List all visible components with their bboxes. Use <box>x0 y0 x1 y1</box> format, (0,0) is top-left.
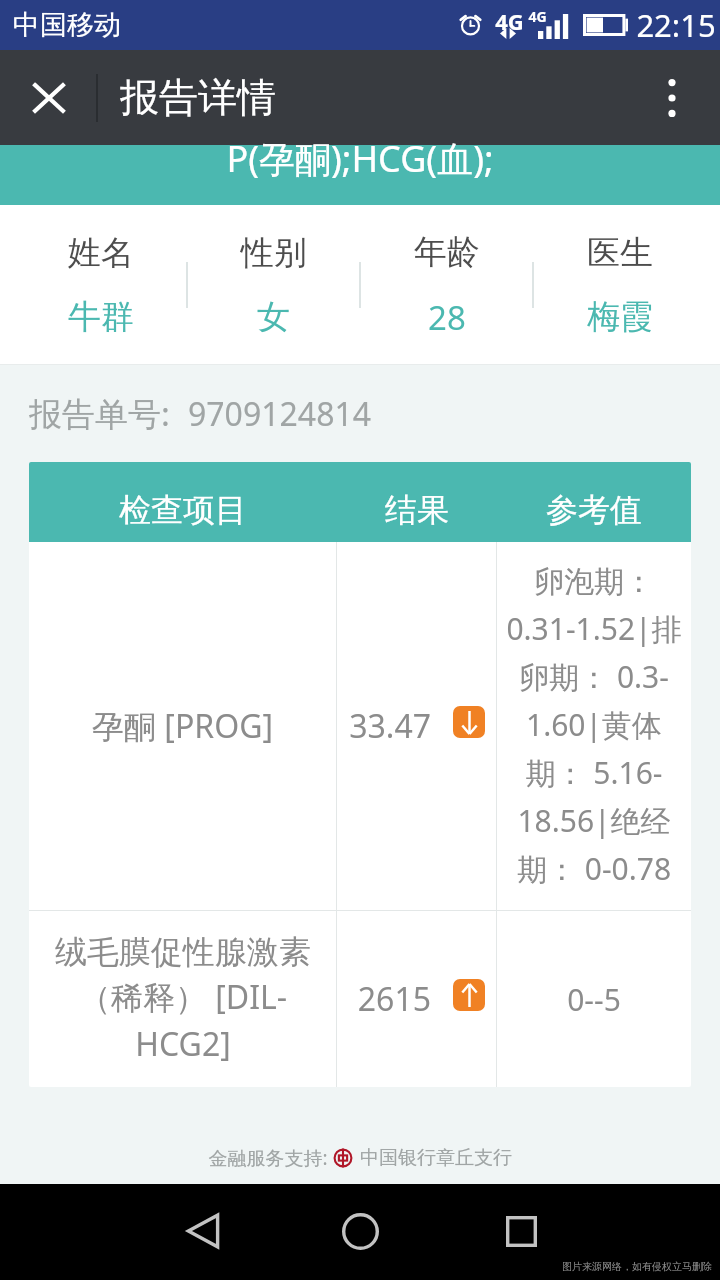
staticText: 中国移动 <box>13 8 121 42</box>
staticText: 报告详情 <box>120 73 276 122</box>
staticText: 28 <box>428 295 466 340</box>
staticText: 9709124814 <box>188 392 372 436</box>
staticText: 卵泡期： 0.31-1.52|排 卵期： 0.3- 1.60|黄体 期： 5.1… <box>506 563 682 889</box>
staticText: 报告单号: <box>29 391 170 436</box>
staticText: 年龄 <box>414 231 480 273</box>
staticText: 2615 <box>357 977 431 1021</box>
staticText: 0--5 <box>567 979 621 1020</box>
staticText: 绒毛膜促性腺激素 （稀释） [DIL- HCG2] <box>55 932 311 1066</box>
staticText: 中国银行章丘支行 <box>360 1146 512 1170</box>
staticText: 金融服务支持: <box>208 1145 328 1171</box>
button[interactable]: Recent apps <box>481 1191 561 1271</box>
button[interactable]: Home <box>320 1191 400 1271</box>
button[interactable]: More options <box>623 50 720 145</box>
staticText: 检查项目 <box>119 490 247 530</box>
button[interactable]: 医生 <box>534 205 705 365</box>
staticText: 医生 <box>587 232 653 274</box>
staticText: 性别 <box>241 232 307 274</box>
staticText: 4G <box>495 6 524 36</box>
button[interactable]: 绒毛膜促性腺激素 （稀释） [DIL- HCG2] <box>29 911 691 1087</box>
staticText: 22:15 <box>636 4 716 46</box>
staticText: 梅霞 <box>587 296 653 338</box>
staticText: 参考值 <box>546 490 642 530</box>
staticText: 图片来源网络，如有侵权立马删除 <box>562 1260 712 1273</box>
staticText: 孕酮 [PROG] <box>92 704 273 748</box>
staticText: P(孕酮);HCG(血); <box>226 134 494 183</box>
button[interactable]: Close <box>0 50 97 145</box>
button[interactable]: 性别 <box>188 205 359 365</box>
staticText: 33.47 <box>349 704 431 748</box>
button[interactable]: Back <box>163 1191 243 1271</box>
button[interactable]: 年龄 <box>361 205 532 365</box>
button[interactable]: 姓名 <box>16 205 186 365</box>
other: Below reference range <box>453 706 485 738</box>
other: Above reference range <box>453 979 485 1011</box>
staticText: 结果 <box>385 490 449 530</box>
staticText: 女 <box>257 296 290 338</box>
button[interactable]: 孕酮 [PROG] <box>29 542 691 910</box>
staticText: 4G <box>528 7 547 26</box>
staticText: 姓名 <box>68 232 134 274</box>
staticText: 牛群 <box>68 296 134 338</box>
